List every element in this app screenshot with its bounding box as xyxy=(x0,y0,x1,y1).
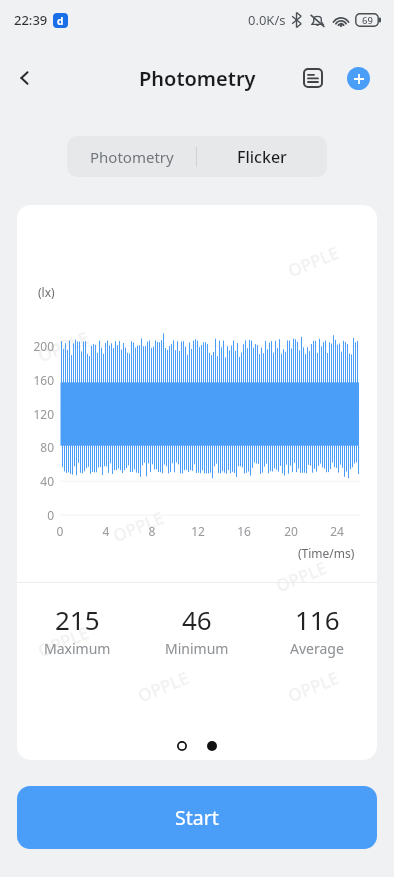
button[interactable]: Add xyxy=(347,67,370,90)
staticText: (lx) xyxy=(38,284,55,300)
staticText: OPPLE xyxy=(285,241,342,282)
staticText: Minimum xyxy=(165,639,229,658)
staticText: 22:39 xyxy=(14,11,48,29)
staticText: OPPLE xyxy=(110,506,167,547)
staticText: 120 xyxy=(22,406,54,422)
staticText: 215 xyxy=(55,602,100,637)
button[interactable]: Photometry xyxy=(67,136,196,177)
staticText: 8 xyxy=(142,523,162,539)
staticText: OPPLE xyxy=(273,556,330,597)
staticText: 160 xyxy=(22,372,54,388)
staticText: 116 xyxy=(295,602,340,637)
staticText: 4 xyxy=(96,523,116,539)
button[interactable]: Back xyxy=(6,59,44,97)
staticText: 0.0K/s xyxy=(248,11,286,29)
staticText: Maximum xyxy=(44,639,111,658)
staticText: OPPLE xyxy=(285,666,342,707)
staticText: OPPLE xyxy=(35,326,92,367)
staticText: 12 xyxy=(188,523,208,539)
staticText: Flicker xyxy=(237,146,287,168)
staticText: 24 xyxy=(327,523,347,539)
staticText: 20 xyxy=(281,523,301,539)
button[interactable]: Start xyxy=(17,786,377,849)
staticText: Photometry xyxy=(139,65,256,92)
staticText: OPPLE xyxy=(135,666,192,707)
staticText: d xyxy=(57,14,64,28)
staticText: 80 xyxy=(22,439,54,455)
staticText: 69 xyxy=(362,14,373,27)
staticText: 0 xyxy=(50,523,70,539)
staticText: Photometry xyxy=(90,147,174,167)
staticText: 46 xyxy=(182,602,212,637)
staticText: 16 xyxy=(234,523,254,539)
staticText: 40 xyxy=(22,473,54,489)
staticText: Start xyxy=(175,804,219,831)
staticText: 200 xyxy=(22,338,54,354)
staticText: 0 xyxy=(22,507,54,523)
button[interactable]: Flicker xyxy=(197,136,327,177)
staticText: Average xyxy=(290,639,344,658)
staticText: (Time/ms) xyxy=(298,545,355,561)
button[interactable]: Reports xyxy=(300,65,326,91)
staticText: OPPLE xyxy=(35,621,92,662)
